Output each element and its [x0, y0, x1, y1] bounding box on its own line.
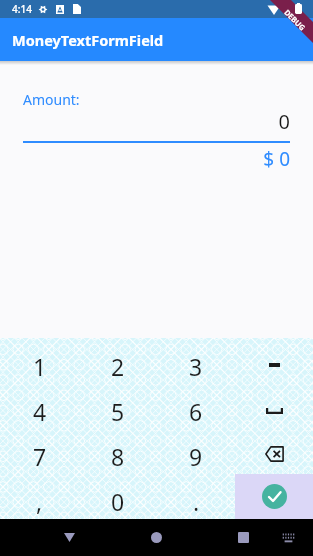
staticText: Amount: [23, 90, 80, 109]
staticText: 3 [189, 351, 203, 382]
button[interactable]: Recents [230, 519, 256, 556]
button[interactable]: . [157, 474, 235, 519]
button[interactable]: Back [56, 519, 82, 556]
button[interactable]: Space [235, 384, 313, 429]
button[interactable]: 0 [79, 474, 157, 519]
button[interactable]: 1 [0, 338, 79, 384]
button[interactable]: 5 [79, 384, 157, 429]
staticText: MoneyTextFormField [12, 30, 164, 50]
button[interactable]: 7 [0, 429, 79, 474]
staticText: . [193, 486, 200, 517]
staticText: 4:14 [12, 2, 32, 16]
staticText: , [36, 486, 43, 517]
button[interactable]: Done [235, 474, 313, 519]
staticText: 7 [33, 441, 47, 472]
staticText: 6 [189, 396, 203, 427]
button[interactable]: 4 [0, 384, 79, 429]
staticText: 0 [111, 486, 125, 517]
staticText: DEBUG [282, 7, 308, 33]
button[interactable]: 2 [79, 338, 157, 384]
staticText: 4 [33, 396, 47, 427]
button[interactable]: , [0, 474, 79, 519]
button[interactable]: 9 [157, 429, 235, 474]
button[interactable]: 3 [157, 338, 235, 384]
button[interactable]: Minus [235, 338, 313, 384]
staticText: 9 [189, 441, 203, 472]
staticText: 5 [111, 396, 125, 427]
button[interactable]: Backspace [235, 429, 313, 474]
button[interactable]: Keyboard [275, 519, 301, 556]
staticText: 2 [111, 351, 125, 382]
button[interactable]: Home [143, 519, 169, 556]
staticText: 0 [23, 108, 290, 135]
button[interactable]: 6 [157, 384, 235, 429]
staticText: 8 [111, 441, 125, 472]
staticText: 1 [33, 351, 47, 382]
staticText: $ 0 [23, 146, 290, 172]
button[interactable]: 8 [79, 429, 157, 474]
